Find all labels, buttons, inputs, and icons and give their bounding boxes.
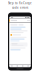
button[interactable]: App toolbar <box>6 19 34 22</box>
button[interactable]: Tab <box>20 65 25 67</box>
button[interactable]: Code sample card <box>10 42 27 46</box>
button[interactable]: Option one <box>10 24 17 26</box>
staticText: 9:41 <box>11 17 14 18</box>
staticText: Step to fix Corge <box>8 1 32 5</box>
button[interactable]: Tab <box>25 65 31 67</box>
staticText: code errors <box>12 6 28 9</box>
button[interactable]: Tab <box>9 65 15 67</box>
button[interactable]: Option two <box>18 24 23 26</box>
button[interactable]: Tab <box>15 65 20 67</box>
